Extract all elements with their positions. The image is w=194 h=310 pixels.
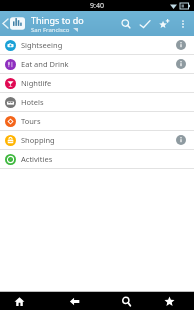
- staticText: Things to do: [31, 14, 84, 26]
- button[interactable]: Home: [0, 292, 39, 310]
- button[interactable]: Search: [109, 292, 144, 310]
- button[interactable]: Bookmark: [154, 11, 173, 36]
- button[interactable]: Activities: [0, 150, 194, 168]
- staticText: Hotels: [21, 97, 173, 107]
- staticText: Shopping: [21, 135, 173, 145]
- button[interactable]: Sightseeing: [0, 36, 194, 54]
- staticText: Eat and Drink: [21, 59, 173, 69]
- button[interactable]: Back: [39, 292, 109, 310]
- staticText: San Francisco: [31, 26, 70, 34]
- button[interactable]: More options: [173, 11, 192, 36]
- button[interactable]: More info about Eat and Drink: [173, 56, 189, 72]
- button[interactable]: Edit: [135, 11, 154, 36]
- button[interactable]: Eat and Drink: [0, 55, 194, 73]
- button[interactable]: Tours: [0, 112, 194, 130]
- button[interactable]: More info about Sightseeing: [173, 37, 189, 53]
- button[interactable]: Search: [116, 11, 135, 36]
- staticText: 9:40: [90, 1, 104, 11]
- button[interactable]: Hotels: [0, 93, 194, 111]
- staticText: Tours: [21, 116, 173, 126]
- button[interactable]: Nightlife: [0, 74, 194, 92]
- staticText: Nightlife: [21, 78, 173, 88]
- button[interactable]: More info about Shopping: [173, 132, 189, 148]
- staticText: Sightseeing: [21, 40, 173, 50]
- staticText: Activities: [21, 154, 173, 164]
- button[interactable]: Things to do: [31, 14, 116, 34]
- button[interactable]: Recent apps: [144, 292, 194, 310]
- button[interactable]: Shopping: [0, 131, 194, 149]
- button[interactable]: Navigate up: [0, 11, 28, 36]
